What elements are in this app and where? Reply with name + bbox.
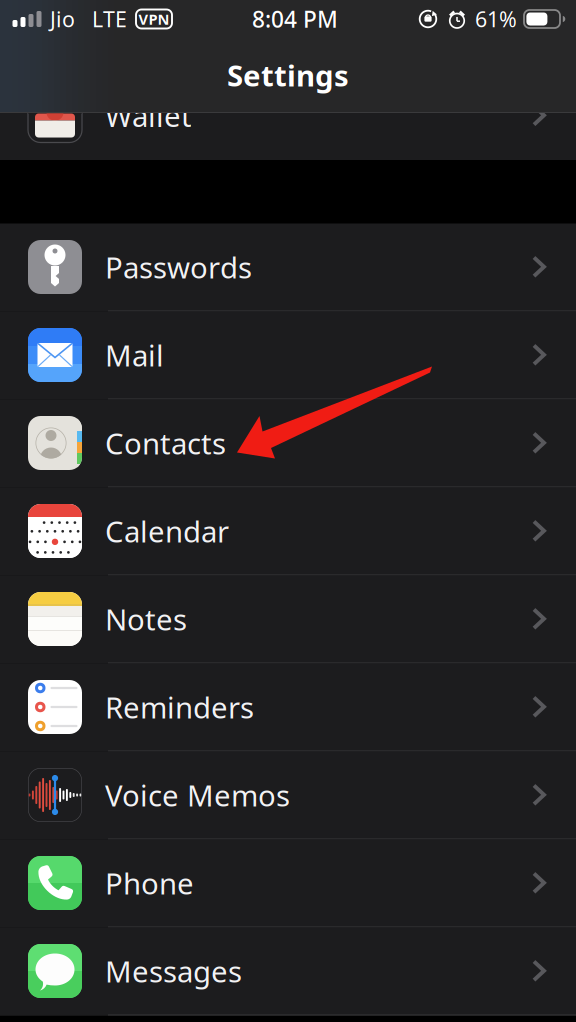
staticText: Jio: [50, 5, 75, 33]
button[interactable]: Notes: [0, 575, 576, 663]
staticText: Wallet: [105, 96, 192, 135]
staticText: Voice Memos: [105, 775, 290, 814]
staticText: Notes: [105, 599, 187, 638]
staticText: Calendar: [105, 511, 229, 550]
button[interactable]: Wallet: [0, 72, 576, 160]
button[interactable]: Calendar: [0, 487, 576, 575]
staticText: Mail: [105, 335, 164, 374]
staticText: Contacts: [105, 423, 226, 462]
staticText: Settings: [227, 55, 349, 94]
staticText: VPN: [138, 9, 169, 29]
staticText: Phone: [105, 863, 194, 902]
staticText: Reminders: [105, 687, 254, 726]
button[interactable]: Contacts: [0, 399, 576, 487]
button[interactable]: Mail: [0, 311, 576, 399]
button[interactable]: Passwords: [0, 223, 576, 311]
staticText: 61%: [475, 5, 517, 33]
button[interactable]: Reminders: [0, 663, 576, 751]
staticText: Messages: [105, 951, 242, 990]
staticText: Passwords: [105, 247, 252, 286]
button[interactable]: Messages: [0, 927, 576, 1015]
button[interactable]: Phone: [0, 839, 576, 927]
button[interactable]: Voice Memos: [0, 751, 576, 839]
staticText: LTE: [92, 5, 127, 33]
staticText: 8:04 PM: [252, 4, 338, 34]
